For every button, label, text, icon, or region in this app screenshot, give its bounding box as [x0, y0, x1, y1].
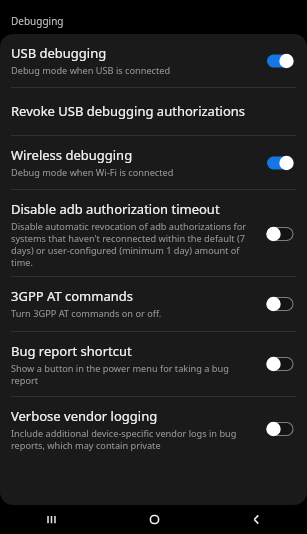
- button[interactable]: Bug report shortcut: [0, 332, 307, 396]
- button[interactable]: Recents: [0, 505, 103, 534]
- button[interactable]: Disable adb authorization timeout: [0, 190, 307, 276]
- staticText: Verbose vendor logging: [11, 407, 158, 425]
- button[interactable]: Disable adb authorization timeout, off: [259, 221, 301, 247]
- staticText: Disable adb authorization timeout: [11, 200, 220, 218]
- button[interactable]: Revoke USB debugging authorizations: [0, 88, 307, 135]
- staticText: Include additional device-specific vendo…: [11, 427, 255, 451]
- button[interactable]: Wireless debugging, on: [259, 150, 301, 176]
- staticText: Show a button in the power menu for taki…: [11, 362, 255, 386]
- button[interactable]: 3GPP AT commands, off: [259, 291, 301, 317]
- button[interactable]: Bug report shortcut, off: [259, 351, 301, 377]
- button[interactable]: USB debugging, on: [259, 48, 301, 74]
- staticText: Debug mode when Wi-Fi is connected: [11, 166, 174, 179]
- staticText: Wireless debugging: [11, 146, 133, 164]
- button[interactable]: Wireless debugging: [0, 136, 307, 189]
- staticText: 3GPP AT commands: [11, 287, 133, 305]
- button[interactable]: Verbose vendor logging: [0, 397, 307, 455]
- staticText: USB debugging: [11, 44, 107, 62]
- staticText: Debugging: [11, 14, 64, 28]
- staticText: Revoke USB debugging authorizations: [11, 102, 246, 120]
- staticText: Debug mode when USB is connected: [11, 64, 171, 77]
- staticText: Turn 3GPP AT commands on or off.: [11, 307, 162, 320]
- staticText: Disable automatic revocation of adb auth…: [11, 220, 255, 268]
- staticText: Bug report shortcut: [11, 342, 132, 360]
- button[interactable]: Back: [205, 505, 307, 534]
- button[interactable]: USB debugging: [0, 34, 307, 87]
- button[interactable]: 3GPP AT commands: [0, 277, 307, 331]
- button[interactable]: Verbose vendor logging, off: [259, 416, 301, 442]
- button[interactable]: Home: [103, 505, 205, 534]
